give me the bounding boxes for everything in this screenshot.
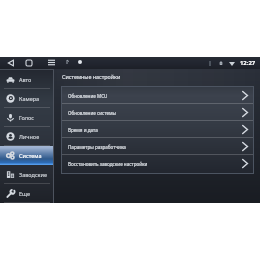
staticText: Системные настройки — [62, 73, 121, 80]
staticText: Система — [19, 152, 42, 159]
button[interactable]: Еще — [0, 184, 54, 203]
staticText: Восстановить заводские настройки — [68, 161, 148, 167]
button[interactable]: Авто — [0, 70, 54, 89]
staticText: Время и дата — [68, 127, 98, 133]
staticText: Еще — [19, 190, 31, 197]
staticText: Обновление системы — [68, 110, 117, 116]
button[interactable]: Камера — [0, 89, 54, 108]
staticText: Заводские — [19, 171, 47, 178]
button[interactable]: Система — [0, 146, 54, 165]
button[interactable]: Обновление системы — [62, 104, 253, 121]
staticText: Параметры разработчика — [68, 144, 126, 150]
button[interactable]: Заводские — [0, 165, 54, 184]
staticText: Камера — [19, 95, 40, 102]
button[interactable]: Home — [23, 57, 34, 68]
staticText: 12:27 — [240, 59, 256, 67]
staticText: Обновление MCU — [68, 93, 108, 99]
staticText: Личное — [19, 133, 40, 140]
button[interactable]: Обновление MCU — [62, 87, 253, 104]
staticText: Авто — [19, 76, 32, 83]
staticText: Голос — [19, 114, 35, 121]
button[interactable]: Восстановить заводские настройки — [62, 155, 253, 172]
button[interactable]: Параметры разработчика — [62, 138, 253, 155]
button[interactable]: Личное — [0, 127, 54, 146]
button[interactable]: Back — [5, 57, 16, 68]
button[interactable]: Время и дата — [62, 121, 253, 138]
button[interactable]: Menu — [46, 57, 57, 68]
button[interactable]: Голос — [0, 108, 54, 127]
